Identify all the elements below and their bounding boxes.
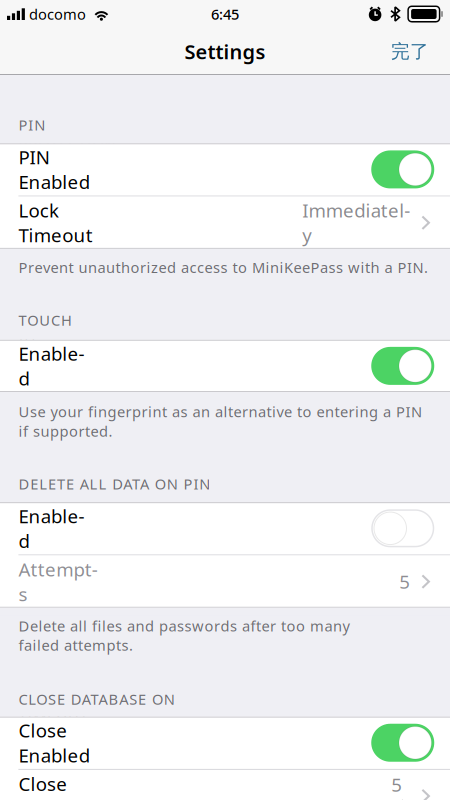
button[interactable]: Enabled [0, 502, 450, 554]
staticText: PIN Enabled [18, 145, 90, 194]
staticText: Immediately [302, 198, 410, 247]
staticText: Close Enabled [18, 718, 90, 768]
staticText: 完了 [391, 40, 429, 63]
staticText: Prevent unauthorized access to MiniKeePa… [18, 257, 428, 277]
staticText: 6:45 [211, 4, 239, 24]
button[interactable]: 完了 [381, 31, 439, 72]
staticText: CLOSE DATABASE ON TIMEOUT [18, 689, 250, 709]
staticText: Lock Timeout [18, 198, 93, 247]
button[interactable]: PIN Enabled [0, 143, 450, 196]
staticText: PIN PROTECTION [18, 115, 148, 134]
staticText: Close Timeout [18, 771, 93, 800]
staticText: TOUCH ID [18, 310, 95, 330]
button[interactable]: Attempts [0, 555, 450, 608]
staticText: Settings [184, 38, 265, 65]
staticText: 5 分 [391, 772, 410, 800]
staticText: Delete all files and passwords after too… [18, 616, 349, 655]
button[interactable]: Lock Timeout [0, 197, 450, 249]
staticText: Enabled [18, 503, 84, 553]
button[interactable]: Close Timeout [0, 770, 450, 800]
staticText: DELETE ALL DATA ON PIN FAILURE [18, 474, 278, 494]
staticText: docomo [29, 4, 86, 24]
staticText: 5 [399, 569, 410, 594]
button[interactable]: Enabled [0, 340, 450, 392]
staticText: Attempts [18, 557, 98, 606]
staticText: Enabled [18, 341, 84, 391]
button[interactable]: Close Enabled [0, 717, 450, 769]
staticText: Use your fingerprint as an alternative t… [18, 402, 422, 441]
